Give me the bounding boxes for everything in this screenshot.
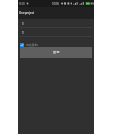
- staticText: 1: [22, 31, 24, 35]
- staticText: 记住密码: [26, 43, 38, 47]
- staticText: Oneproject: [19, 11, 35, 15]
- other: Remember password: [20, 43, 24, 47]
- button[interactable]: Remember password: [20, 43, 92, 47]
- staticText: 9:30: [19, 2, 25, 6]
- staticText: 1: [22, 22, 24, 26]
- staticText: 登录: [53, 50, 61, 54]
- button[interactable]: 登录: [20, 47, 92, 58]
- staticText: 100%: [52, 2, 60, 6]
